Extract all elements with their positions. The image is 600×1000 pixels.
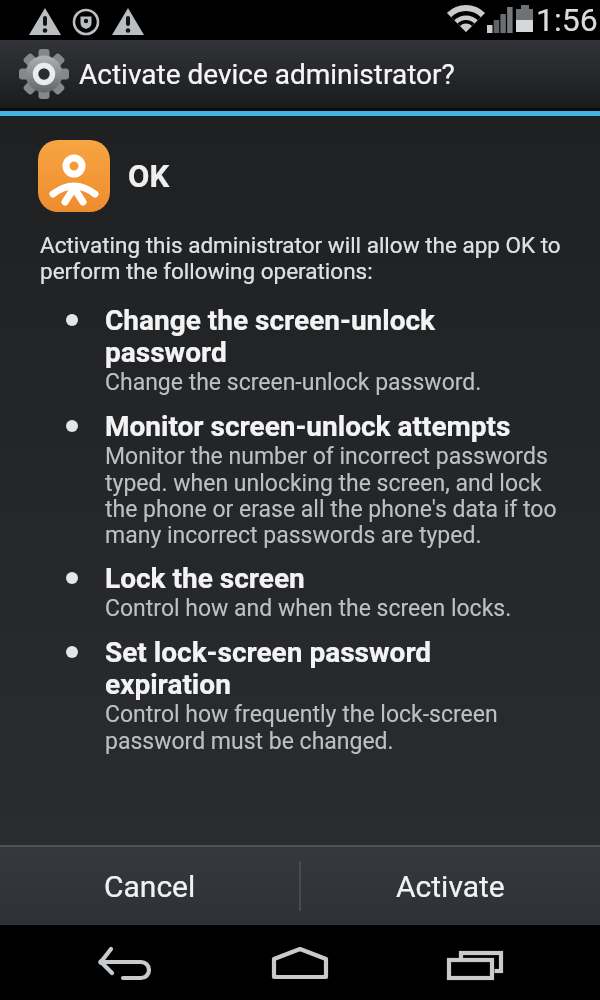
staticText: Monitor screen-unlock attempts (105, 410, 511, 443)
staticText: Activate device administrator? (79, 58, 455, 91)
staticText: Change the screen-unlock password (105, 304, 436, 369)
staticText: Change the screen-unlock password. (105, 369, 482, 396)
staticText: Control how and when the screen locks. (105, 595, 512, 622)
staticText: Activating this administrator will allow… (40, 232, 561, 285)
button[interactable]: Cancel (0, 847, 300, 925)
staticText: Activate (396, 869, 505, 904)
staticText: 1:56 (536, 1, 598, 39)
staticText: Monitor the number of incorrect password… (105, 443, 557, 548)
staticText: OK (128, 158, 170, 194)
button[interactable]: Activate (300, 847, 600, 925)
staticText: Set lock-screen password expiration (105, 636, 432, 701)
staticText: Cancel (104, 869, 196, 904)
staticText: Lock the screen (105, 562, 305, 595)
button[interactable] (263, 933, 337, 993)
button[interactable] (88, 933, 162, 993)
button[interactable] (437, 933, 511, 993)
staticText: Control how frequently the lock-screen p… (105, 701, 498, 754)
